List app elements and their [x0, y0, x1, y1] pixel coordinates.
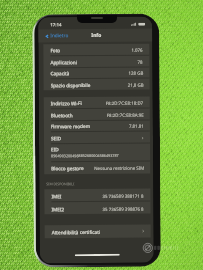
button[interactable]: Indirizzo Wi-Fi: [44, 97, 150, 109]
button[interactable]: IMEI: [44, 189, 150, 202]
staticText: IMEI2: [51, 206, 64, 212]
staticText: Blocco gestore: [51, 165, 84, 171]
staticText: IMEI: [51, 193, 62, 199]
staticText: SIM DISPONIBILI: [46, 181, 75, 186]
staticText: Attendibilità certificati: [52, 229, 101, 235]
button[interactable]: Indietro: [45, 32, 69, 39]
button[interactable]: Blocco gestore: [44, 162, 150, 174]
staticText: 17:14: [50, 21, 62, 27]
staticText: Bluetooth: [51, 112, 73, 118]
staticText: Info: [91, 32, 101, 39]
staticText: 35 736589 398876 8: [102, 206, 144, 212]
button[interactable]: Applicazioni: [43, 56, 149, 68]
button[interactable]: Bluetooth: [44, 109, 150, 121]
staticText: F8:2D:7C:E8:18:D7: [106, 100, 144, 106]
staticText: Indirizzo Wi-Fi: [51, 100, 82, 106]
button[interactable]: IMEI2: [44, 202, 150, 215]
staticText: Applicazioni: [50, 59, 77, 65]
staticText: 78: [137, 59, 143, 65]
button[interactable]: SEID: [44, 132, 150, 144]
staticText: F8:2D:7C:E8:8A:9E: [107, 112, 144, 118]
button[interactable]: Capacità: [43, 67, 150, 79]
staticText: Foto: [50, 47, 60, 53]
staticText: 7.81.81: [129, 123, 144, 129]
staticText: 35 736589 388171 8: [102, 193, 144, 199]
staticText: Firmware modem: [51, 123, 91, 129]
staticText: 89049032004988852680004586493787: [51, 153, 119, 158]
staticText: Nessuna restrizione SIM: [94, 165, 144, 171]
button[interactable]: Spazio disponibile: [44, 79, 150, 91]
button[interactable]: Attendibilità certificati: [45, 225, 151, 238]
staticText: Spazio disponibile: [51, 82, 91, 88]
button[interactable]: EID: [44, 143, 150, 162]
button[interactable]: Foto: [43, 44, 149, 56]
button[interactable]: Firmware modem: [44, 120, 150, 132]
staticText: Capacità: [50, 70, 69, 76]
staticText: 128 GB: [128, 70, 143, 76]
staticText: 21,8 GB: [128, 82, 144, 88]
staticText: 1.076: [131, 47, 143, 53]
staticText: EID: [51, 146, 59, 152]
staticText: SEID: [51, 135, 62, 141]
staticText: Indietro: [50, 32, 69, 39]
